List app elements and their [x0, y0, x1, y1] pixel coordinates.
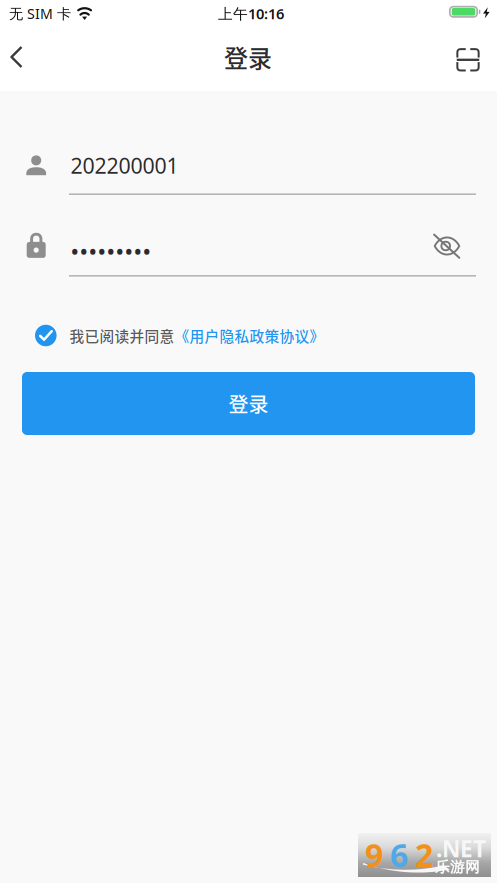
staticText: 6 [390, 833, 408, 876]
staticText: 乐游网 [435, 858, 480, 876]
button[interactable]: Show password [427, 230, 467, 264]
staticText: 无 SIM 卡 [9, 4, 71, 23]
staticText: 我已阅读并同意 [70, 325, 175, 346]
staticText: 2 [415, 833, 433, 876]
button[interactable]: 登录 [22, 372, 475, 435]
staticText: 登录 [228, 389, 268, 418]
staticText: 9 [365, 833, 383, 876]
staticText: 登录 [224, 39, 272, 74]
staticText: 202200001 [71, 151, 179, 180]
button[interactable]: Scan QR code [444, 35, 492, 85]
staticText: .NET [436, 833, 486, 864]
staticText: 上午10:16 [218, 4, 284, 23]
button[interactable]: Back [0, 32, 33, 82]
staticText: ••••••••• [70, 235, 151, 267]
staticText: 《用户隐私政策协议》 [175, 325, 325, 346]
button[interactable]: 我已阅读并同意 [30, 320, 330, 351]
